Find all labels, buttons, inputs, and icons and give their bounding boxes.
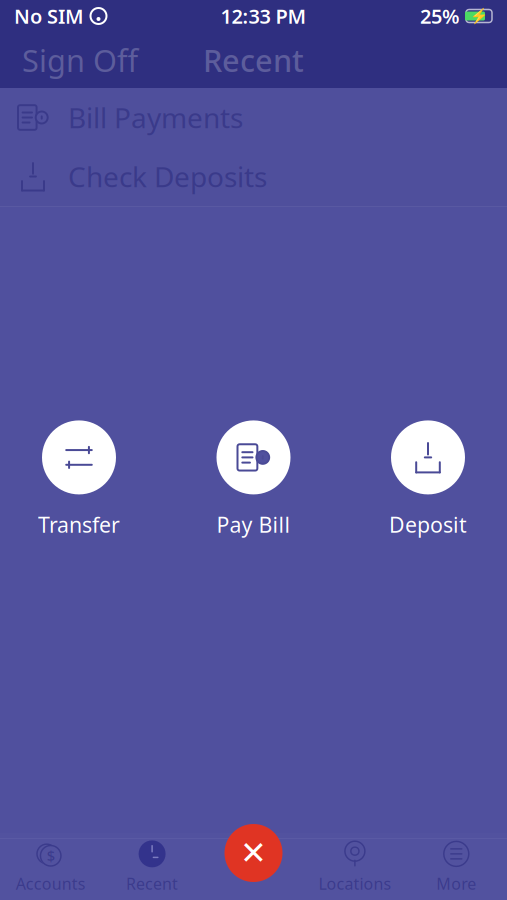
button[interactable]: $ (0, 839, 101, 895)
button[interactable]: Bill Payments (0, 88, 507, 147)
staticText: Pay Bill (216, 510, 290, 539)
staticText: Recent (203, 40, 304, 80)
staticText: No SIM (14, 3, 84, 29)
button[interactable]: Locations (304, 839, 406, 895)
staticText: Deposit (389, 510, 467, 539)
staticText: Sign Off (22, 40, 138, 80)
staticText: $ (47, 846, 55, 865)
button[interactable]: Transfer (14, 420, 144, 539)
staticText: Accounts (16, 873, 86, 894)
button[interactable]: Deposit (363, 420, 493, 539)
staticText: 12:33 PM (220, 3, 306, 29)
staticText: Bill Payments (68, 99, 243, 136)
staticText: Transfer (38, 510, 120, 539)
staticText: ⚡ (470, 8, 488, 24)
button[interactable]: Close (224, 824, 282, 882)
staticText: Recent (126, 873, 178, 894)
button[interactable]: Recent (101, 839, 203, 895)
button[interactable]: Sign Off (18, 34, 142, 86)
staticText: Check Deposits (68, 158, 267, 195)
button[interactable]: Pay Bill (188, 420, 318, 539)
staticText: Locations (318, 873, 391, 894)
button[interactable]: More (406, 839, 507, 895)
button[interactable]: Check Deposits (0, 147, 507, 206)
staticText: ✕ (240, 835, 267, 871)
staticText: 25% (420, 3, 460, 29)
staticText: More (436, 873, 476, 894)
